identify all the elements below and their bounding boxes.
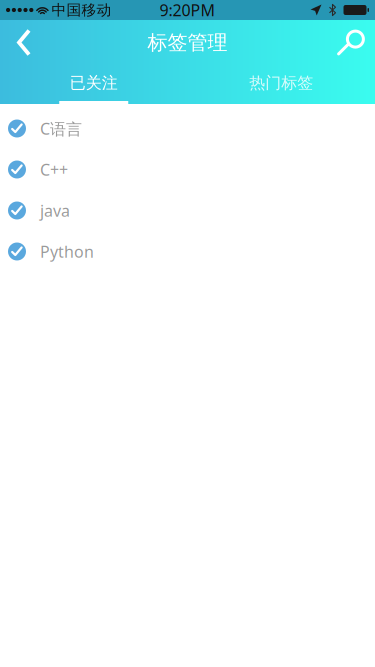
button[interactable]: 热门标签 [187,65,375,104]
staticText: C语言 [40,118,82,139]
button[interactable]: C++ [0,149,375,190]
staticText: 已关注 [70,73,118,93]
button[interactable]: Search [328,20,374,65]
staticText: Python [40,241,94,262]
staticText: C++ [40,159,68,180]
staticText: 9:20PM [159,0,215,21]
staticText: 热门标签 [249,73,313,93]
button[interactable]: Python [0,231,375,272]
button[interactable]: Back [1,20,47,65]
staticText: java [40,200,70,221]
staticText: 中国移动 [51,1,111,19]
button[interactable]: 已关注 [0,65,187,104]
button[interactable]: java [0,190,375,231]
button[interactable]: C语言 [0,108,375,149]
staticText: 标签管理 [147,30,227,55]
